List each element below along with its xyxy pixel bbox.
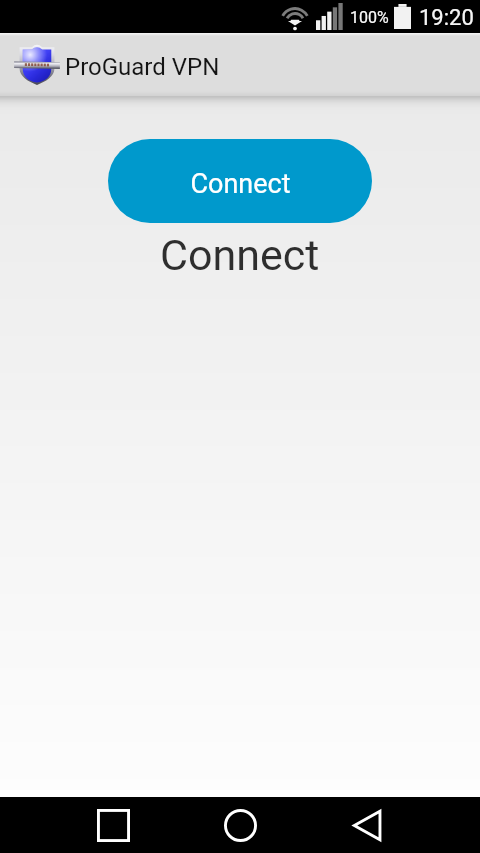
staticText: Connect [160, 230, 320, 280]
staticText: 100% [350, 8, 389, 27]
button[interactable]: Connect [108, 139, 372, 223]
button[interactable]: Back [311, 797, 423, 853]
staticText: ProGuard VPN [65, 53, 220, 81]
staticText: Connect [190, 168, 291, 200]
button[interactable]: Home [184, 797, 296, 853]
button[interactable]: Recent apps [58, 797, 169, 853]
staticText: 19:20 [419, 5, 474, 31]
